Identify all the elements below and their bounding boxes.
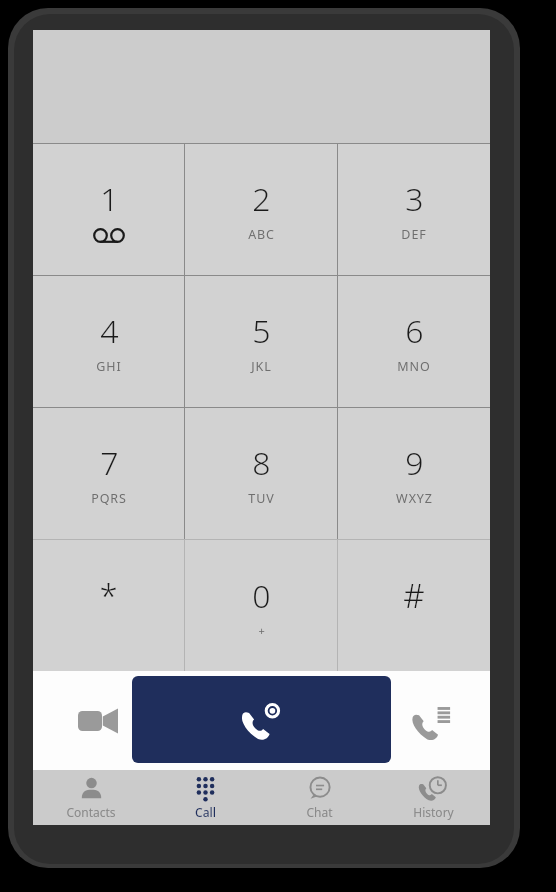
button[interactable]: # <box>338 540 490 671</box>
staticText: 9 <box>405 441 424 485</box>
button[interactable]: 9 <box>338 408 490 539</box>
staticText: Contacts <box>66 804 116 820</box>
staticText: History <box>413 804 454 820</box>
button[interactable]: 2 <box>185 144 337 275</box>
button[interactable]: 5 <box>185 276 337 407</box>
staticText: TUV <box>248 490 275 507</box>
staticText: ABC <box>248 226 275 243</box>
staticText: 0 <box>252 574 271 618</box>
staticText: 2 <box>252 177 271 221</box>
staticText: * <box>99 573 118 618</box>
staticText: Call <box>195 804 216 820</box>
button[interactable]: 0 <box>185 540 337 671</box>
button[interactable]: 1 <box>33 144 184 275</box>
button[interactable]: 3 <box>338 144 490 275</box>
staticText: MNO <box>397 358 431 375</box>
staticText: # <box>403 573 425 618</box>
staticText: 6 <box>405 309 424 353</box>
button[interactable]: 4 <box>33 276 184 407</box>
staticText: WXYZ <box>396 490 433 507</box>
staticText: JKL <box>251 358 272 375</box>
button[interactable]: 7 <box>33 408 184 539</box>
staticText: GHI <box>96 358 122 375</box>
staticText: 1 <box>100 177 119 221</box>
button[interactable]: Call options <box>398 686 468 756</box>
button[interactable]: Chat <box>262 770 376 825</box>
button[interactable]: History <box>376 770 490 825</box>
button[interactable]: * <box>33 540 184 671</box>
staticText: 4 <box>100 309 119 353</box>
button[interactable]: Contacts <box>33 770 148 825</box>
staticText: 7 <box>100 441 119 485</box>
staticText: PQRS <box>91 490 127 507</box>
staticText: DEF <box>401 226 427 243</box>
button[interactable]: 8 <box>185 408 337 539</box>
button[interactable]: 6 <box>338 276 490 407</box>
button[interactable]: Call <box>148 770 262 825</box>
staticText: Chat <box>306 804 333 820</box>
staticText: 3 <box>405 177 424 221</box>
staticText: 5 <box>252 309 271 353</box>
button[interactable]: Video call <box>63 686 133 756</box>
staticText: 8 <box>252 441 271 485</box>
button[interactable]: Call <box>132 676 391 763</box>
staticText: + <box>258 623 266 638</box>
